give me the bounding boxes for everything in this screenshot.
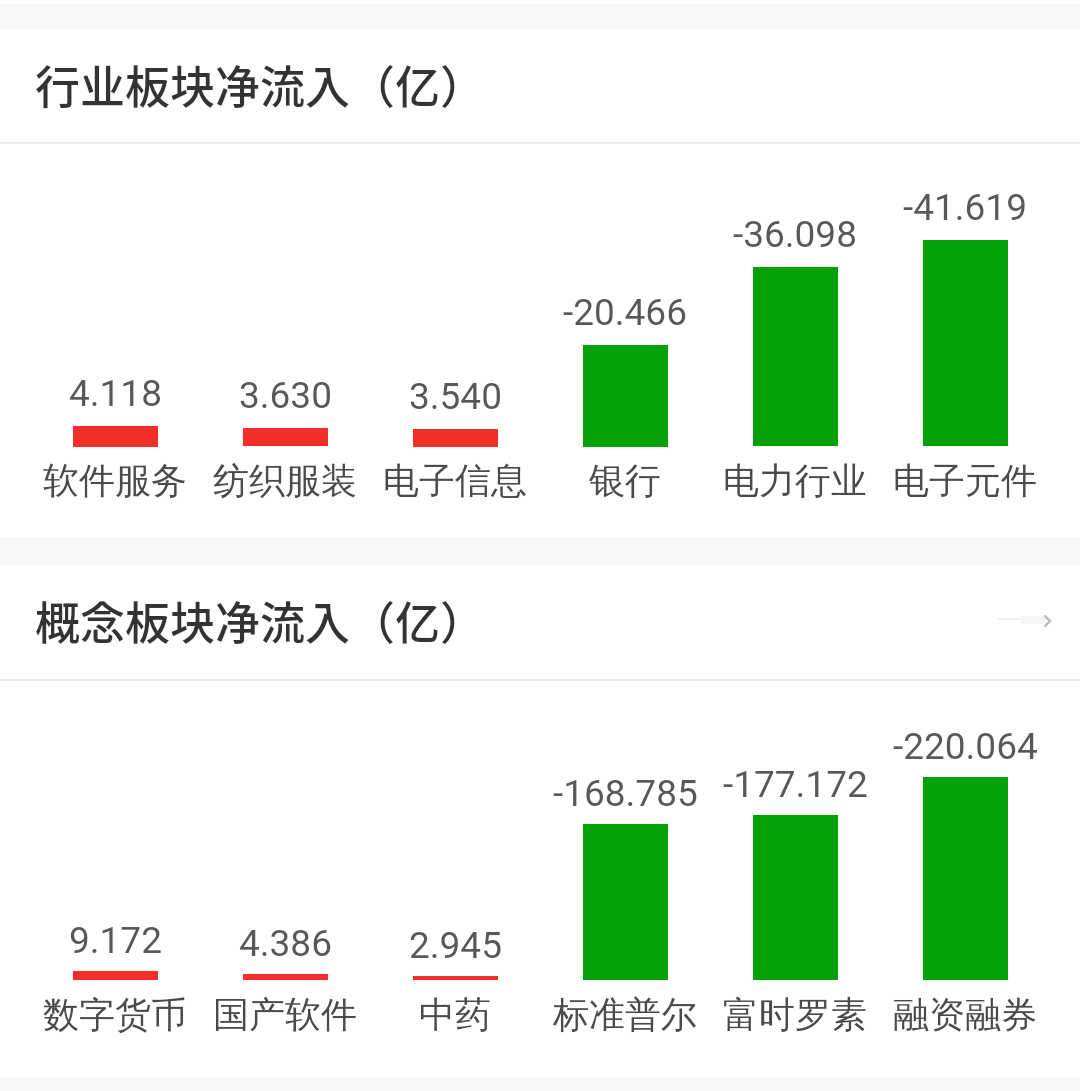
button[interactable]: 标准普尔	[515, 988, 735, 1040]
staticText: 3.630	[239, 374, 332, 417]
staticText: 融资融券	[893, 992, 1037, 1037]
button[interactable]: 电力行业	[685, 454, 905, 506]
button[interactable]: 数字货币	[5, 988, 225, 1040]
staticText: -41.619	[903, 186, 1027, 229]
staticText: 中药	[419, 992, 491, 1037]
staticText: 电子信息	[383, 458, 527, 503]
staticText: 软件服务	[43, 458, 187, 503]
staticText: 数字货币	[43, 992, 187, 1037]
button[interactable]	[1040, 610, 1056, 630]
staticText: -20.466	[563, 291, 687, 334]
staticText: 2.945	[409, 924, 502, 967]
button[interactable]: 软件服务	[5, 454, 225, 506]
staticText: 纺织服装	[213, 458, 357, 503]
staticText: 国产软件	[213, 992, 357, 1037]
button[interactable]: 富时罗素	[685, 988, 905, 1040]
staticText: 4.118	[69, 372, 162, 415]
staticText: 概念板块净流入（亿）	[35, 588, 486, 653]
button[interactable]: 中药	[345, 988, 565, 1040]
staticText: -177.172	[723, 763, 868, 806]
staticText: 银行	[589, 458, 661, 503]
staticText: 电力行业	[723, 458, 867, 503]
staticText: 3.540	[409, 375, 502, 418]
button[interactable]: 概念板块净流入（亿）	[0, 585, 1080, 655]
button[interactable]: 银行	[515, 454, 735, 506]
staticText: 电子元件	[893, 458, 1037, 503]
button[interactable]: 纺织服装	[175, 454, 395, 506]
staticText: 标准普尔	[553, 992, 697, 1037]
button[interactable]: 电子元件	[855, 454, 1075, 506]
staticText: -168.785	[553, 772, 698, 815]
button[interactable]: 国产软件	[175, 988, 395, 1040]
button[interactable]: 融资融券	[855, 988, 1075, 1040]
staticText: -220.064	[893, 725, 1038, 768]
staticText: 4.386	[239, 922, 332, 965]
button[interactable]: 电子信息	[345, 454, 565, 506]
button[interactable]: 行业板块净流入（亿）	[0, 49, 1080, 119]
staticText: -36.098	[733, 213, 857, 256]
staticText: 富时罗素	[723, 992, 867, 1037]
staticText: 9.172	[69, 919, 162, 962]
staticText: 行业板块净流入（亿）	[35, 52, 486, 117]
